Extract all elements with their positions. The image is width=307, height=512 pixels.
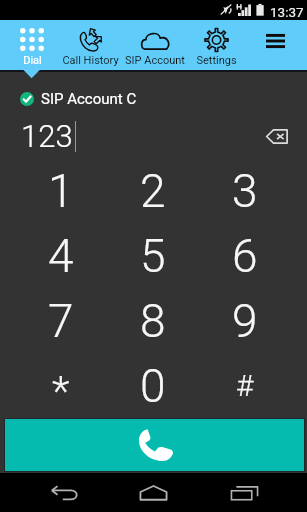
button[interactable]: [16, 20, 48, 70]
button[interactable]: 0: [107, 353, 199, 418]
staticText: Call History: [62, 54, 119, 67]
button[interactable]: 7: [15, 288, 107, 353]
staticText: *: [52, 367, 70, 415]
button[interactable]: Call: [5, 419, 304, 471]
button[interactable]: [123, 20, 187, 70]
button[interactable]: [60, 20, 120, 70]
staticText: 2: [140, 164, 166, 218]
button[interactable]: Back: [40, 473, 88, 512]
staticText: 3: [232, 164, 258, 218]
staticText: SIP Account C: [41, 90, 137, 108]
staticText: 1: [48, 164, 74, 218]
button[interactable]: 8: [107, 288, 199, 353]
button[interactable]: 1: [15, 158, 107, 223]
staticText: 5: [140, 229, 166, 283]
button[interactable]: Menu: [244, 20, 307, 70]
staticText: 0: [140, 359, 166, 413]
staticText: 4: [48, 229, 74, 283]
button[interactable]: 5: [107, 223, 199, 288]
staticText: 8: [140, 294, 166, 348]
staticText: #: [236, 368, 254, 403]
staticText: 7: [48, 294, 74, 348]
staticText: Dial: [23, 54, 42, 67]
button[interactable]: 3: [199, 158, 291, 223]
button[interactable]: *: [15, 353, 107, 418]
button[interactable]: #: [199, 353, 291, 418]
button[interactable]: 6: [199, 223, 291, 288]
staticText: 9: [232, 294, 258, 348]
button[interactable]: Home: [129, 473, 177, 512]
button[interactable]: SIP Account C: [0, 87, 307, 111]
staticText: 6: [232, 229, 258, 283]
staticText: 13:37: [270, 4, 304, 20]
button[interactable]: Recents: [220, 473, 268, 512]
staticText: 123: [21, 118, 73, 154]
staticText: Settings: [196, 54, 237, 67]
button[interactable]: 2: [107, 158, 199, 223]
button[interactable]: 4: [15, 223, 107, 288]
button[interactable]: 9: [199, 288, 291, 353]
button[interactable]: Backspace: [258, 117, 296, 155]
button[interactable]: [186, 20, 246, 70]
staticText: SIP Account: [125, 54, 185, 67]
